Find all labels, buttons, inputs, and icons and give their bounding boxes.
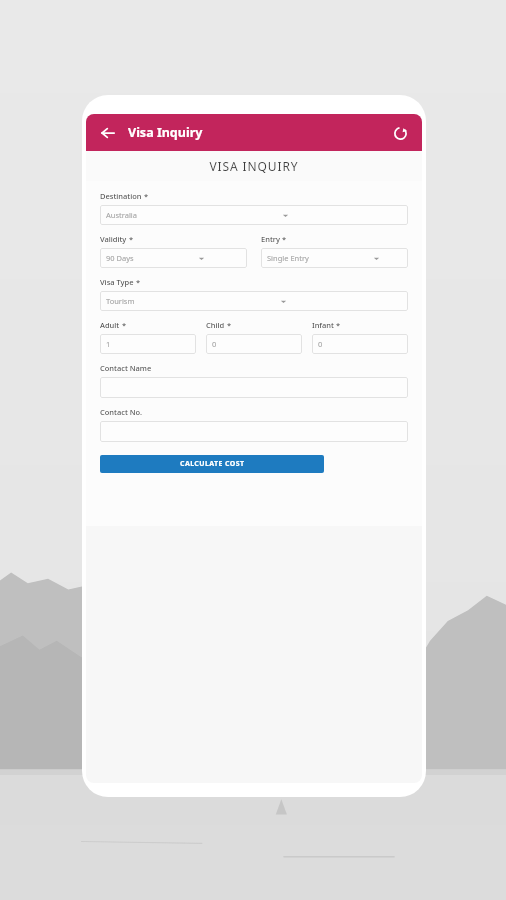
staticText: 90 Days — [106, 253, 134, 263]
staticText: Adult — [100, 320, 120, 330]
button[interactable]: 0 — [206, 334, 302, 354]
staticText: Tourism — [106, 296, 135, 306]
staticText: CALCULATE COST — [180, 459, 245, 469]
staticText: 1 — [106, 339, 111, 349]
button[interactable]: Refresh — [389, 122, 411, 144]
button[interactable]: 1 — [100, 334, 196, 354]
staticText: 0 — [212, 339, 217, 349]
button[interactable]: Tourism — [100, 291, 408, 311]
staticText: Australia — [106, 210, 137, 220]
staticText: Infant — [312, 320, 334, 330]
button[interactable]: Australia — [100, 205, 408, 225]
button[interactable]: CALCULATE COST — [100, 455, 324, 473]
staticText: * — [142, 191, 149, 201]
button[interactable]: 90 Days — [100, 248, 247, 268]
staticText: 0 — [318, 339, 323, 349]
staticText: Visa Type — [100, 277, 134, 287]
staticText: Contact Name — [100, 363, 152, 373]
button[interactable]: Back — [97, 122, 119, 144]
button[interactable] — [100, 377, 408, 398]
staticText: * — [127, 234, 134, 244]
staticText: * — [120, 320, 127, 330]
button[interactable]: 0 — [312, 334, 408, 354]
staticText: Validity — [100, 234, 127, 244]
button[interactable] — [100, 421, 408, 442]
staticText: Entry — [261, 234, 280, 244]
staticText: Single Entry — [267, 253, 309, 263]
staticText: VISA INQUIRY — [209, 158, 299, 174]
staticText: Visa Inquiry — [128, 124, 203, 141]
staticText: * — [134, 277, 141, 287]
staticText: * — [334, 320, 341, 330]
staticText: Destination — [100, 191, 142, 201]
staticText: * — [225, 320, 232, 330]
staticText: * — [280, 234, 287, 244]
staticText: Contact No. — [100, 407, 143, 417]
staticText: Child — [206, 320, 225, 330]
button[interactable]: Single Entry — [261, 248, 408, 268]
